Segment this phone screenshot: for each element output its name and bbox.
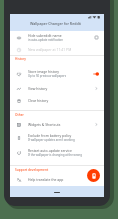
staticText: If the wallpaper is changing at the wron… <box>28 153 88 157</box>
button[interactable]: Clear history <box>10 95 104 106</box>
staticText: Up to 50 previous wallpapers <box>28 74 67 78</box>
staticText: Restart auto-update service <box>28 148 72 153</box>
button[interactable]: Help translate the app <box>10 174 104 185</box>
button[interactable]: Exclude from battery policy <box>10 131 104 144</box>
button[interactable]: Home <box>54 192 60 193</box>
staticText: Wallpaper Changer for Reddit <box>30 21 81 26</box>
staticText: Widgets & Shortcuts <box>28 122 61 127</box>
button[interactable]: Widgets & Shortcuts <box>10 119 104 130</box>
staticText: History <box>15 57 26 61</box>
staticText: Clear history <box>28 98 49 103</box>
staticText: Support development <box>15 168 49 172</box>
staticText: View history <box>28 86 48 91</box>
staticText: Hide subreddit name <box>28 33 62 38</box>
button[interactable]: Store image history <box>10 67 104 80</box>
staticText: Exclude from battery policy <box>28 133 72 138</box>
button[interactable]: Restart auto-update service <box>10 146 104 159</box>
staticText: Store image history <box>28 69 60 74</box>
staticText: New wallpaper at 11:41 PM <box>28 47 72 52</box>
button[interactable]: View history <box>10 83 104 94</box>
staticText: Other <box>15 113 24 117</box>
staticText: Help translate the app <box>28 177 64 182</box>
button[interactable]: Hide subreddit name <box>10 31 104 44</box>
button[interactable]: Donate <box>87 169 100 182</box>
staticText: If wallpaper updates aren't working <box>28 138 75 142</box>
button[interactable]: New wallpaper at 11:41 PM <box>10 44 104 55</box>
staticText: in auto-update notification <box>28 38 64 42</box>
